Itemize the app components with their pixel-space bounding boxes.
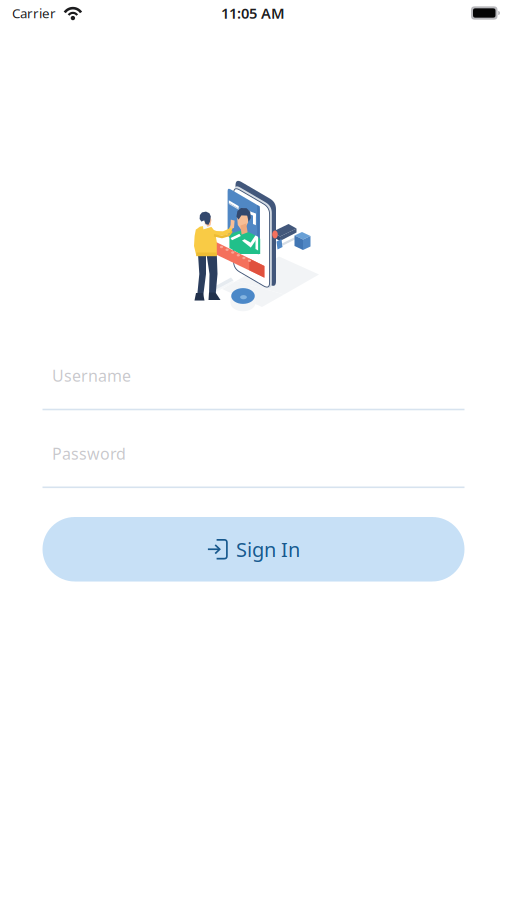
staticText: Username bbox=[52, 365, 131, 386]
staticText: Sign In bbox=[236, 536, 300, 563]
staticText: Carrier bbox=[12, 4, 56, 22]
staticText: 11:05 AM bbox=[221, 3, 285, 23]
staticText: Password bbox=[52, 443, 126, 464]
button[interactable]: Sign In bbox=[42, 517, 464, 581]
